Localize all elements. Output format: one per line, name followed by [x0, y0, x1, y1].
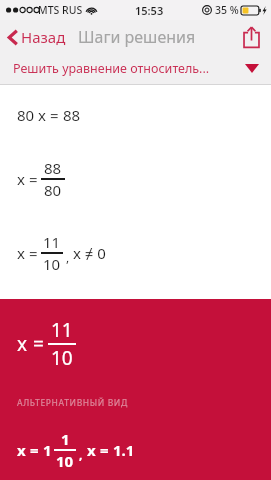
- staticText: 80: [44, 180, 62, 200]
- staticText: x: [17, 243, 25, 263]
- staticText: 10: [56, 451, 74, 471]
- staticText: x: [17, 331, 28, 357]
- staticText: =: [33, 331, 44, 357]
- staticText: x: [17, 440, 26, 460]
- staticText: 35 %: [215, 3, 239, 17]
- staticText: Решить уравнение относитель...: [13, 60, 210, 77]
- staticText: 80 x: [17, 105, 46, 125]
- staticText: 10: [51, 345, 73, 371]
- staticText: x ≠ 0: [73, 243, 106, 263]
- staticText: ,: [79, 446, 83, 462]
- staticText: 15:53: [135, 3, 164, 18]
- button[interactable]: Share: [238, 21, 265, 53]
- staticText: x: [17, 169, 25, 189]
- staticText: MTS RUS: [38, 3, 83, 17]
- staticText: =: [29, 243, 38, 263]
- staticText: x: [87, 440, 96, 460]
- staticText: 11: [51, 317, 73, 343]
- staticText: Назад: [21, 27, 66, 47]
- button[interactable]: Назад: [6, 23, 68, 51]
- staticText: ,: [66, 249, 70, 265]
- staticText: 88: [44, 158, 62, 178]
- staticText: АЛЬТЕРНАТИВНЫЙ ВИД: [17, 397, 128, 409]
- staticText: 11: [43, 232, 61, 252]
- staticText: =: [29, 169, 38, 189]
- staticText: =: [30, 440, 39, 460]
- staticText: 88: [63, 105, 81, 125]
- staticText: 1.1: [113, 440, 135, 460]
- staticText: 1: [43, 440, 52, 460]
- staticText: 10: [43, 254, 61, 274]
- staticText: Шаги решения: [78, 26, 196, 48]
- staticText: 1: [61, 429, 70, 449]
- button[interactable]: Решить уравнение относитель...: [0, 53, 271, 84]
- staticText: =: [50, 105, 59, 125]
- staticText: =: [100, 440, 109, 460]
